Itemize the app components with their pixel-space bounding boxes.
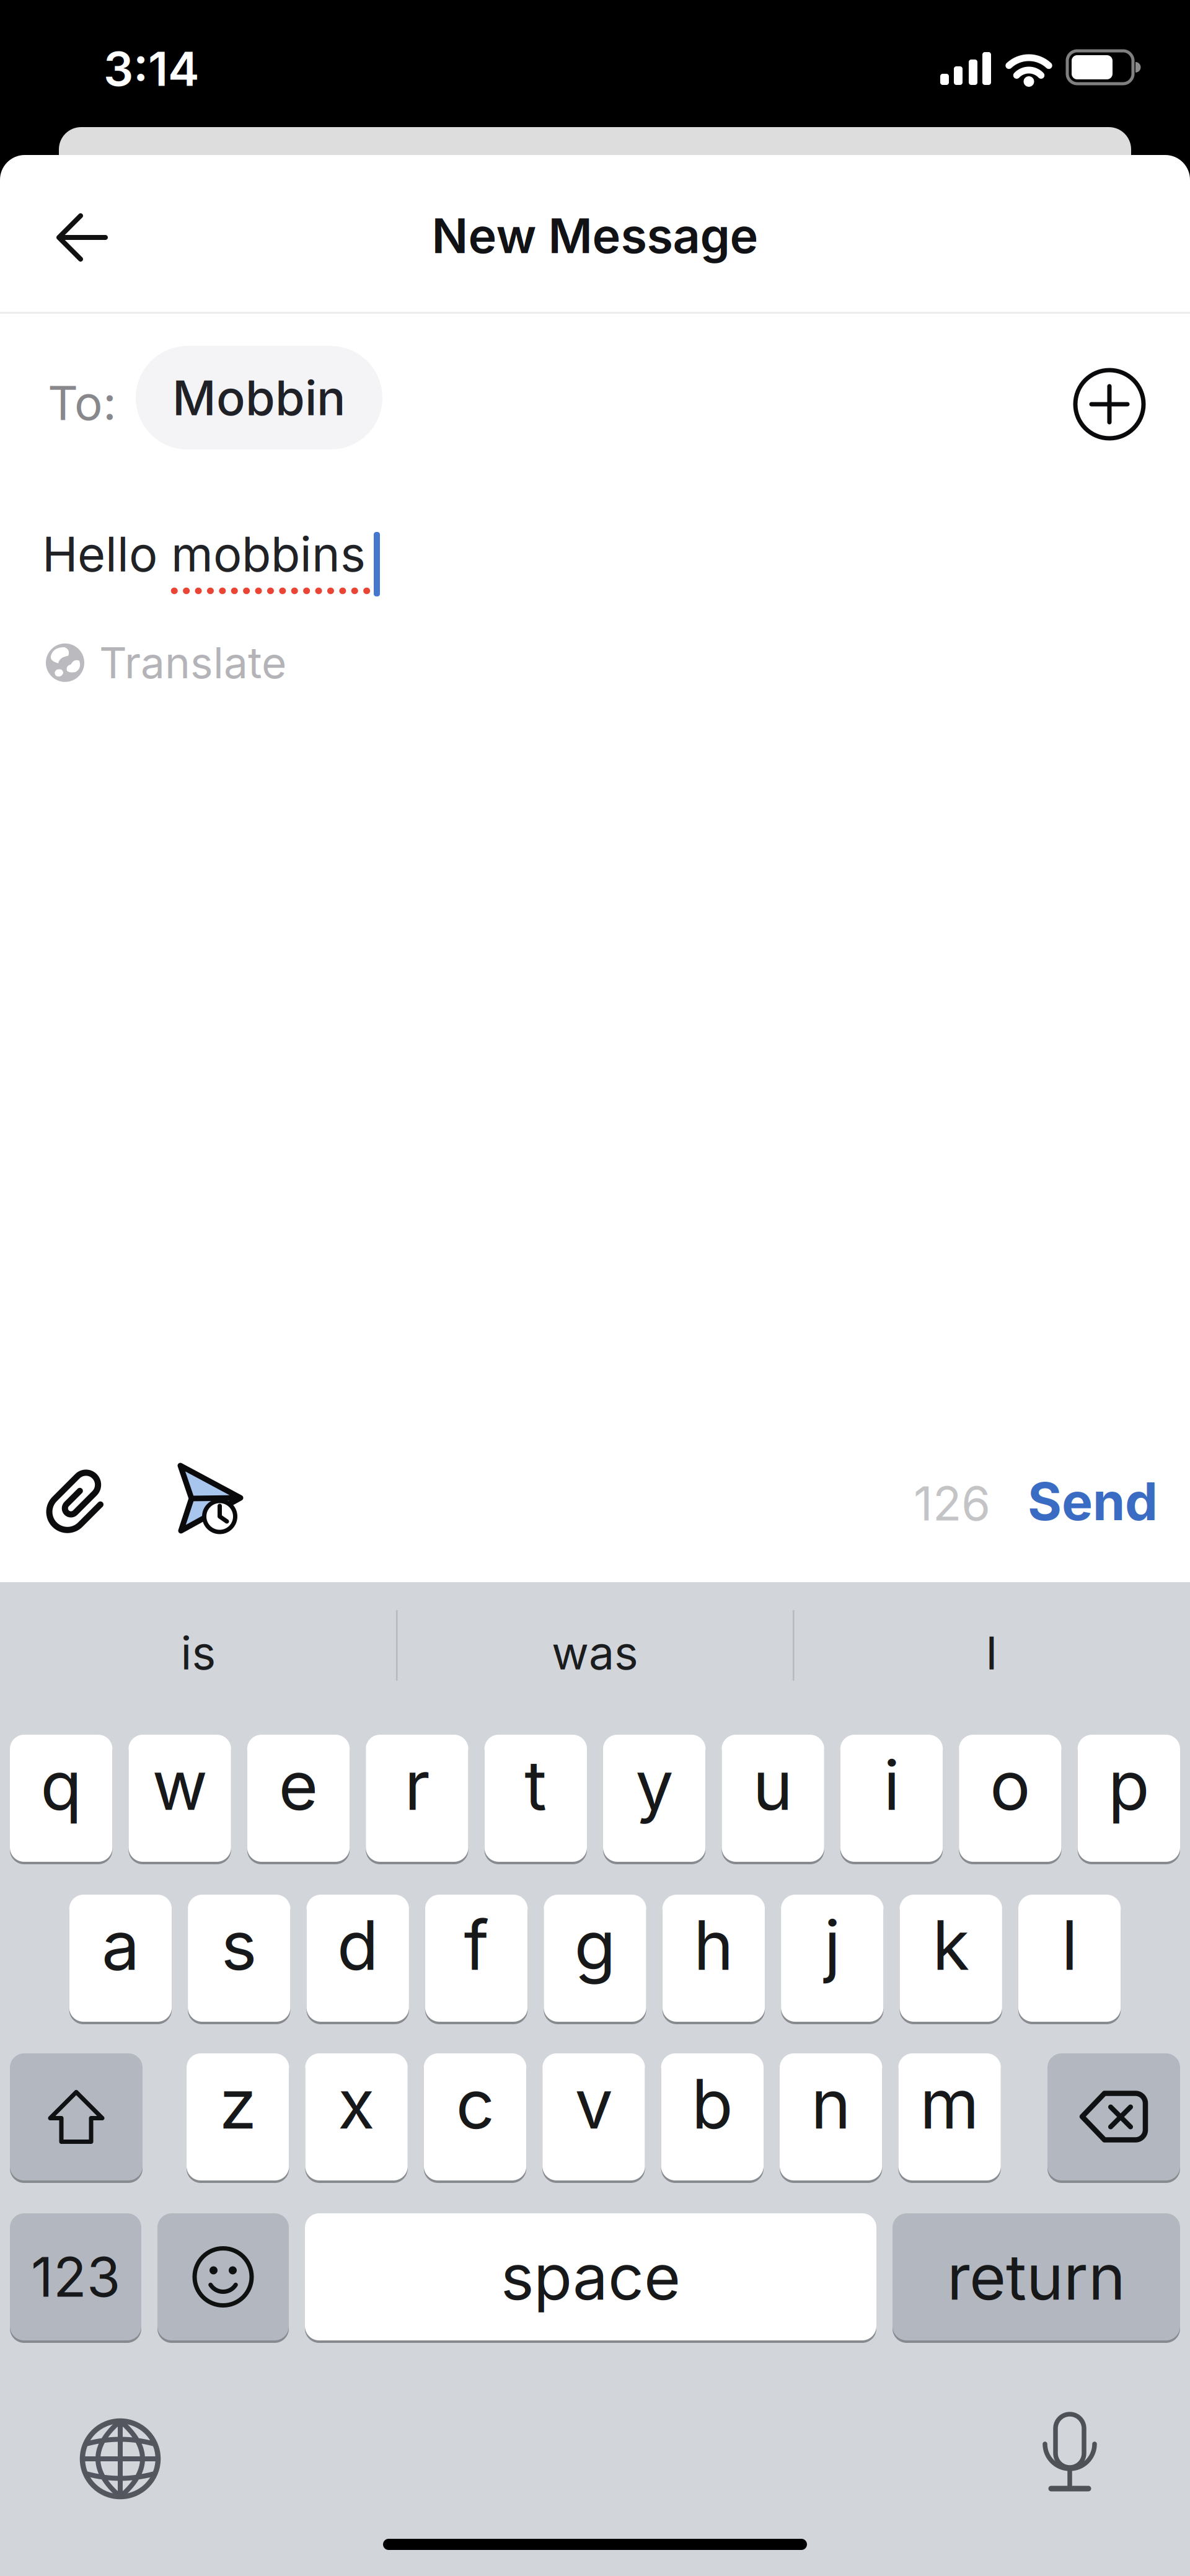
staticText: space: [501, 2240, 681, 2314]
button[interactable]: q: [10, 1735, 112, 1862]
button[interactable]: [174, 1462, 245, 1535]
button[interactable]: m: [898, 2053, 1001, 2180]
button[interactable]: k: [900, 1895, 1002, 2022]
staticText: d: [337, 1905, 379, 1985]
staticText: return: [947, 2240, 1126, 2314]
button[interactable]: t: [484, 1735, 587, 1862]
staticText: p: [1108, 1745, 1150, 1825]
button[interactable]: b: [661, 2053, 764, 2180]
button[interactable]: r: [366, 1735, 468, 1862]
staticText: c: [456, 2064, 494, 2144]
staticText: 123: [31, 2245, 120, 2309]
staticText: o: [990, 1745, 1031, 1825]
button[interactable]: Mobbin: [136, 346, 382, 449]
button[interactable]: space: [305, 2213, 876, 2340]
staticText: s: [221, 1905, 257, 1985]
staticText: I: [985, 1626, 998, 1680]
staticText: a: [102, 1905, 139, 1985]
button[interactable]: f: [425, 1895, 528, 2022]
button[interactable]: is: [12, 1597, 384, 1709]
button[interactable]: 123: [10, 2213, 141, 2340]
staticText: m: [920, 2064, 979, 2144]
button[interactable]: o: [959, 1735, 1061, 1862]
button[interactable]: [157, 2213, 289, 2340]
staticText: Hello mobbins: [42, 526, 366, 582]
button[interactable]: h: [662, 1895, 765, 2022]
staticText: is: [181, 1626, 216, 1680]
staticText: r: [404, 1745, 430, 1825]
staticText: k: [932, 1905, 969, 1985]
button[interactable]: c: [424, 2053, 526, 2180]
staticText: l: [1061, 1905, 1078, 1985]
button[interactable]: [10, 2053, 143, 2180]
staticText: y: [635, 1745, 673, 1825]
staticText: New Message: [432, 207, 758, 264]
button[interactable]: l: [1018, 1895, 1121, 2022]
button[interactable]: w: [129, 1735, 231, 1862]
staticText: j: [824, 1905, 840, 1985]
button[interactable]: was: [409, 1597, 781, 1709]
staticText: 3:14: [104, 41, 200, 97]
staticText: b: [692, 2064, 733, 2144]
button[interactable]: [48, 1468, 110, 1533]
button[interactable]: u: [722, 1735, 824, 1862]
staticText: i: [884, 1745, 900, 1825]
button[interactable]: d: [306, 1895, 409, 2022]
button[interactable]: n: [780, 2053, 882, 2180]
button[interactable]: a: [69, 1895, 172, 2022]
button[interactable]: [1075, 370, 1144, 438]
staticText: n: [811, 2064, 851, 2144]
button[interactable]: [81, 2419, 160, 2499]
button[interactable]: [57, 213, 108, 262]
button[interactable]: Translate: [46, 637, 286, 688]
staticText: x: [338, 2064, 375, 2144]
button[interactable]: i: [840, 1735, 943, 1862]
button[interactable]: e: [247, 1735, 350, 1862]
button[interactable]: [1047, 2053, 1180, 2180]
staticText: was: [552, 1626, 638, 1680]
button[interactable]: j: [781, 1895, 884, 2022]
button[interactable]: I: [806, 1597, 1178, 1709]
staticText: w: [152, 1745, 207, 1825]
staticText: g: [574, 1905, 616, 1985]
button[interactable]: g: [544, 1895, 646, 2022]
button[interactable]: s: [188, 1895, 290, 2022]
staticText: h: [693, 1905, 734, 1985]
staticText: 126: [914, 1476, 990, 1531]
button[interactable]: v: [542, 2053, 645, 2180]
button[interactable]: Send: [1028, 1471, 1158, 1532]
staticText: Send: [1028, 1471, 1158, 1532]
staticText: Mobbin: [172, 369, 346, 426]
staticText: z: [219, 2064, 256, 2144]
button[interactable]: z: [187, 2053, 289, 2180]
button[interactable]: [1033, 2413, 1107, 2499]
staticText: u: [753, 1745, 793, 1825]
staticText: t: [525, 1745, 547, 1825]
staticText: v: [575, 2064, 613, 2144]
staticText: q: [40, 1745, 82, 1825]
staticText: e: [279, 1745, 318, 1825]
staticText: To:: [48, 375, 117, 431]
button[interactable]: x: [305, 2053, 408, 2180]
staticText: f: [464, 1905, 489, 1985]
button[interactable]: y: [603, 1735, 706, 1862]
button[interactable]: return: [892, 2213, 1180, 2340]
button[interactable]: p: [1078, 1735, 1180, 1862]
staticText: Translate: [99, 637, 286, 688]
